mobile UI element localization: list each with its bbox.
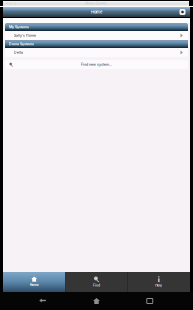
button[interactable]: Back [33, 294, 53, 308]
staticText: Home [30, 283, 39, 287]
button[interactable]: Home [3, 272, 65, 292]
staticText: Sally's Home [14, 33, 36, 38]
staticText: Delta [14, 50, 23, 55]
staticText: Home [91, 10, 102, 14]
button[interactable]: Settings [178, 7, 187, 17]
staticText: Demo Systems [9, 42, 34, 46]
button[interactable]: Help [128, 272, 190, 292]
button[interactable]: Find [65, 272, 128, 292]
button[interactable]: Find new system... [5, 60, 188, 69]
staticText: Find [93, 283, 100, 287]
button[interactable]: Home [86, 294, 106, 308]
staticText: Home Control [85, 2, 106, 5]
button[interactable]: Delta [5, 48, 188, 57]
button[interactable]: Sally's Home [5, 31, 188, 40]
staticText: Find new system... [81, 62, 112, 67]
staticText: My Systems [9, 25, 29, 29]
staticText: Help [155, 283, 162, 287]
button[interactable]: Recents [140, 294, 160, 308]
